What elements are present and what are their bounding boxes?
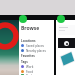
button[interactable] [58,25,75,35]
staticText: Saved places [26,44,45,48]
staticText: Nearby places [26,49,46,53]
button[interactable]: Work [19,64,53,69]
button[interactable]: App badge [19,15,27,23]
button[interactable]: App badge [57,15,65,23]
staticText: Favorites [21,54,35,58]
button[interactable]: Food [19,69,53,74]
staticText: Food [26,70,34,74]
staticText: Work [26,65,34,69]
staticText: Browse [21,25,40,32]
staticText: Parks [26,74,34,75]
button[interactable]: Parks [19,74,53,75]
button[interactable]: Saved places [19,43,53,48]
staticText: Tags [21,60,28,64]
button[interactable]: Nearby places [19,48,53,53]
button[interactable] [58,38,75,48]
staticText: Locations [21,39,36,43]
